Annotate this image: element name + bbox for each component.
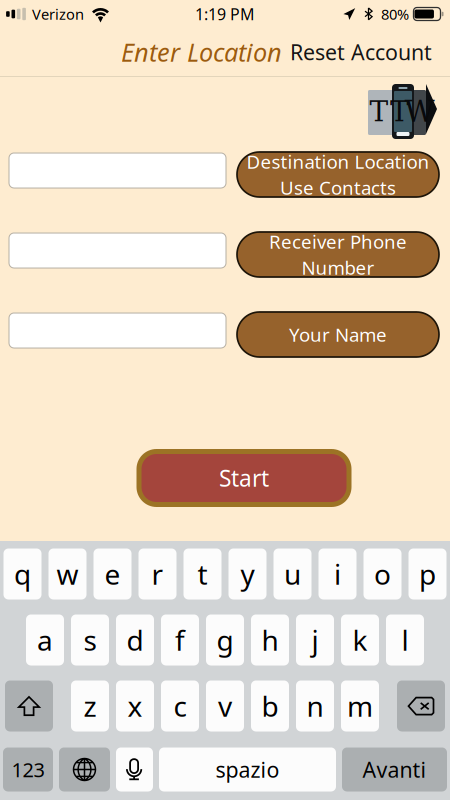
staticText: r [151,555,163,593]
staticText: t [197,555,207,593]
button[interactable]: p [408,548,446,599]
staticText: Use Contacts [280,175,396,200]
staticText: c [173,687,186,725]
button[interactable]: Shift [5,680,53,731]
button[interactable]: t [183,548,221,599]
staticText: l [401,621,408,659]
staticText: v [218,687,232,725]
button[interactable]: l [386,614,424,665]
staticText: w [56,555,78,593]
button[interactable]: g [206,614,244,665]
button[interactable]: Next keyboard [59,747,110,791]
button[interactable]: Reset Account [282,28,440,76]
staticText: Reset Account [290,38,432,66]
button[interactable]: s [71,614,109,665]
button[interactable]: u [273,548,311,599]
staticText: T [369,95,388,128]
staticText: spazio [215,755,279,784]
button[interactable]: q [3,548,41,599]
staticText: f [175,621,185,659]
button[interactable]: a [26,614,64,665]
button[interactable]: e [93,548,131,599]
staticText: Receiver Phone [269,229,407,254]
button[interactable]: d [116,614,154,665]
staticText: j [311,621,318,659]
button[interactable]: i [318,548,356,599]
button[interactable]: 123 [3,747,53,791]
button[interactable]: spazio [159,747,336,791]
staticText: Your Name [289,322,387,347]
staticText: 123 [11,756,44,783]
staticText: n [306,687,323,725]
staticText: i [334,555,341,593]
button[interactable]: Start [139,451,349,504]
staticText: e [104,555,120,593]
staticText: T [390,95,409,128]
button[interactable]: w [48,548,86,599]
button[interactable]: z [71,680,109,731]
button[interactable]: v [206,680,244,731]
staticText: b [261,687,278,725]
staticText: d [126,621,143,659]
staticText: p [419,555,436,593]
staticText: y [240,555,254,593]
button[interactable]: h [251,614,289,665]
button[interactable]: f [161,614,199,665]
button[interactable]: Your Name [237,312,439,357]
button[interactable]: Destination Location [237,152,439,197]
staticText: Enter Location [121,35,282,69]
staticText: Destination Location [246,149,429,174]
button[interactable]: n [296,680,334,731]
staticText: Start [219,463,269,493]
button[interactable]: k [341,614,379,665]
button[interactable]: x [116,680,154,731]
button[interactable]: Dictation [116,747,153,791]
staticText: x [127,687,142,725]
staticText: m [347,687,373,725]
button[interactable]: Avanti [342,747,447,791]
button[interactable]: b [251,680,289,731]
staticText: 80% [381,4,409,24]
staticText: Avanti [362,755,426,784]
staticText: Verizon [32,4,84,24]
staticText: q [14,555,31,593]
staticText: h [261,621,278,659]
staticText: u [284,555,301,593]
staticText: a [37,621,53,659]
button[interactable]: r [138,548,176,599]
staticText: g [216,621,233,659]
button[interactable]: m [341,680,379,731]
staticText: z [83,687,96,725]
button[interactable]: Delete [397,680,445,731]
staticText: k [352,621,367,659]
button[interactable]: o [363,548,401,599]
staticText: s [83,621,96,659]
staticText: W [404,94,434,128]
staticText: o [374,555,391,593]
staticText: Number [301,255,374,280]
staticText: 1:19 PM [195,3,255,25]
button[interactable]: c [161,680,199,731]
button[interactable]: Receiver Phone [237,232,439,277]
button[interactable]: j [296,614,334,665]
button[interactable]: y [228,548,266,599]
